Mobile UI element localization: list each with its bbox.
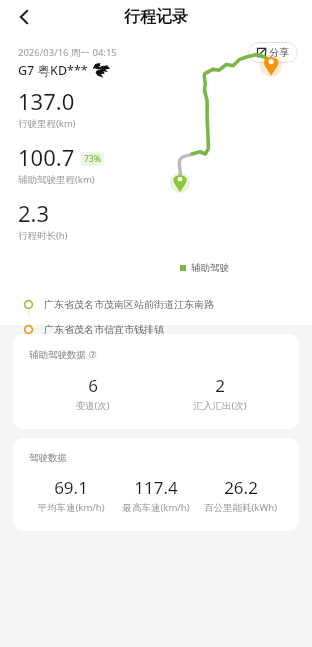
staticText: 辅助驾驶 [191,262,229,274]
staticText: 广东省茂名市茂南区站前街道江东南路 [44,298,214,311]
staticText: 百公里能耗(kWh) [204,501,277,514]
staticText: 2 [215,374,225,397]
button[interactable]: 辅助驾驶数据 ⑦ [13,334,299,429]
staticText: 分享 [269,46,289,59]
staticText: 行驶里程(km) [18,117,76,130]
staticText: 汇入汇出(次) [193,399,247,412]
staticText: 73% [84,153,101,165]
button[interactable]: 驾驶数据 [13,438,299,531]
staticText: 行程时长(h) [18,229,68,242]
staticText: 26.2 [224,476,258,499]
staticText: 平均车速(km/h) [37,501,105,514]
staticText: 137.0 [18,86,75,116]
staticText: 变道(次) [75,399,110,412]
staticText: 69.1 [54,476,88,499]
staticText: 117.4 [134,476,178,499]
staticText: 2.3 [18,198,50,228]
staticText: 最高车速(km/h) [122,501,190,514]
staticText: 驾驶数据 [29,452,67,464]
staticText: 6 [88,374,98,397]
staticText: 2026/03/16 周一 04:15 [18,46,117,59]
button[interactable]: 分享 [248,42,298,63]
staticText: 广东省茂名市信宜市钱排镇 [44,323,164,336]
staticText: 100.7 [18,142,75,172]
staticText: 辅助驾驶里程(km) [18,173,95,186]
staticText: G7 粤KD*** [18,62,88,79]
staticText: 行程记录 [124,7,188,27]
button[interactable]: Back [8,1,40,33]
staticText: 辅助驾驶数据 ⑦ [29,348,97,361]
